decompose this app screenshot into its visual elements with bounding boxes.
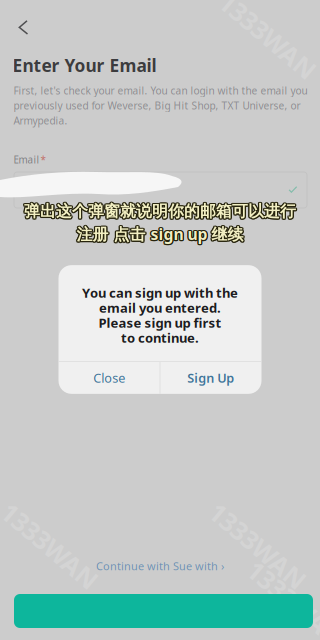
staticText: Continue with Sue with ›: [96, 559, 224, 573]
button[interactable]: Back: [3, 7, 43, 47]
staticText: 1333WAN: [237, 587, 320, 621]
button[interactable]: Continue: [14, 594, 313, 628]
staticText: 注册 点击 sign up 继续: [76, 224, 243, 246]
staticText: 注册 点击 sign up 继续: [76, 222, 243, 243]
staticText: email you entered.: [99, 299, 221, 317]
staticText: 弹出这个弹窗就说明你的邮箱可以进行: [25, 202, 297, 222]
staticText: Email: [13, 153, 39, 166]
staticText: 注册 点击 sign up 继续: [78, 223, 245, 245]
staticText: 注册 点击 sign up 继续: [75, 223, 242, 245]
button[interactable]: Continue with Sue with ›: [60, 557, 260, 575]
staticText: 注册 点击 sign up 继续: [77, 224, 244, 245]
staticText: previously used for Weverse, Big Hit Sho…: [13, 99, 300, 112]
staticText: 弹出这个弹窗就说明你的邮箱可以进行: [24, 200, 296, 220]
staticText: Armypedia.: [13, 114, 67, 127]
staticText: Sign Up: [187, 369, 234, 386]
staticText: 弹出这个弹窗就说明你的邮箱可以进行: [23, 201, 295, 221]
staticText: 1333WAN: [0, 529, 109, 563]
staticText: 注册 点击 sign up 继续: [77, 222, 244, 244]
staticText: to continue.: [121, 329, 199, 347]
staticText: 弹出这个弹窗就说明你的邮箱可以进行: [25, 201, 297, 220]
staticText: 弹出这个弹窗就说明你的邮箱可以进行: [25, 201, 297, 221]
staticText: First, let's check your email. You can l…: [13, 84, 307, 97]
staticText: 注册 点击 sign up 继续: [76, 223, 243, 245]
button[interactable]: Close: [59, 362, 160, 394]
staticText: 弹出这个弹窗就说明你的邮箱可以进行: [23, 201, 295, 220]
staticText: 弹出这个弹窗就说明你的邮箱可以进行: [24, 203, 296, 222]
staticText: Please sign up first: [98, 314, 221, 332]
staticText: 弹出这个弹窗就说明你的邮箱可以进行: [24, 201, 296, 221]
button[interactable]: Sign Up: [160, 362, 261, 394]
staticText: 注册 点击 sign up 继续: [76, 224, 243, 245]
staticText: Enter Your Email: [12, 53, 156, 77]
staticText: Close: [93, 369, 125, 386]
staticText: 弹出这个弹窗就说明你的邮箱可以进行: [23, 202, 295, 222]
staticText: *: [40, 153, 45, 166]
staticText: You can sign up with the: [82, 284, 238, 302]
staticText: 注册 点击 sign up 继续: [76, 222, 243, 244]
